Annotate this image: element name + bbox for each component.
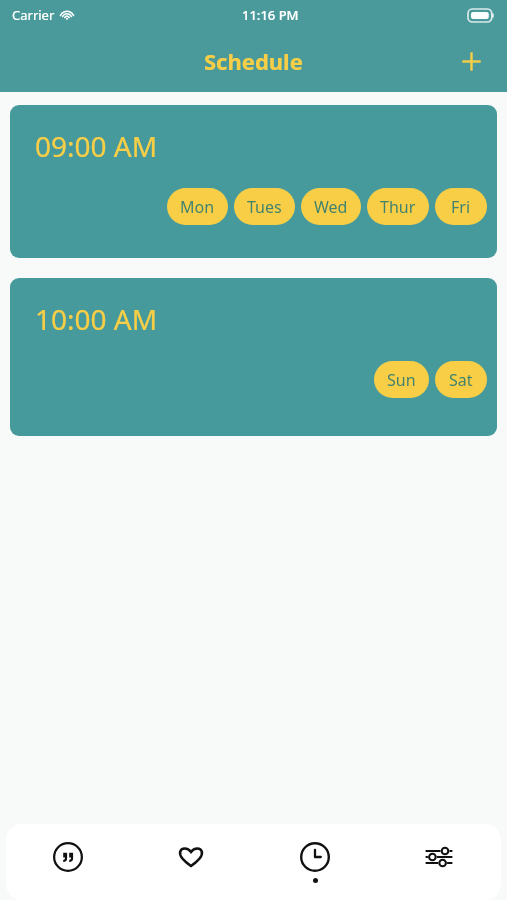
button[interactable]: Settings [377,824,501,900]
button[interactable]: Mon [167,188,228,225]
staticText: Thur [380,196,416,218]
button[interactable]: Wed [301,188,361,225]
staticText: Fri [451,196,471,218]
button[interactable]: Fri [435,188,487,225]
button[interactable]: Sat [435,361,487,398]
staticText: 10:00 AM [35,300,158,338]
staticText: Wed [314,196,348,218]
button[interactable]: Sun [374,361,429,398]
staticText: 09:00 AM [35,127,158,165]
button[interactable]: Quotes [6,824,129,900]
staticText: Mon [180,196,215,218]
staticText: Schedule [204,46,303,76]
staticText: Sun [387,369,416,391]
staticText: Carrier [12,6,55,24]
staticText: Sat [449,369,473,391]
button[interactable]: Tues [234,188,295,225]
button[interactable]: 10:00 AM [10,278,497,436]
button[interactable]: Favorites [129,824,253,900]
button[interactable]: Thur [367,188,429,225]
staticText: 11:16 PM [242,6,299,24]
staticText: Tues [247,196,282,218]
button[interactable]: 09:00 AM [10,105,497,258]
button[interactable]: Schedule [253,824,377,900]
button[interactable]: Add schedule [449,39,493,83]
